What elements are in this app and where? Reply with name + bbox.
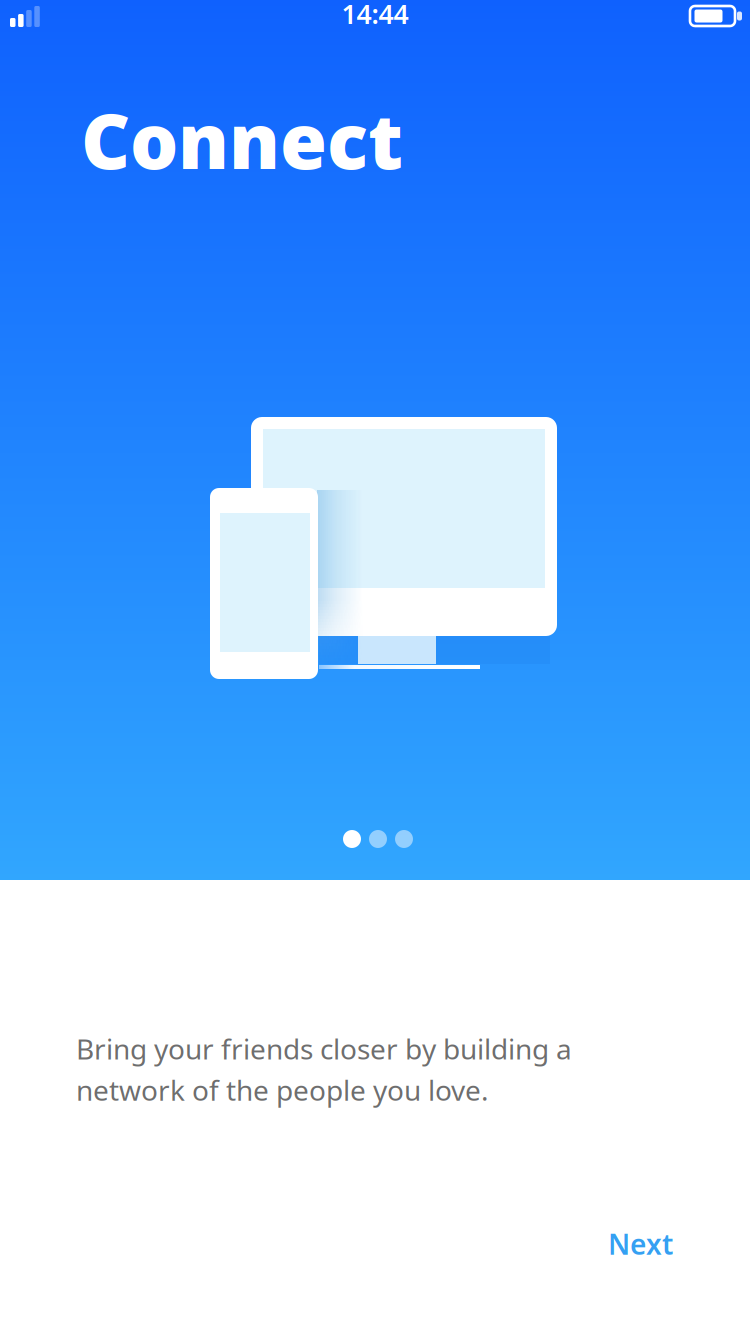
button[interactable]: Next (583, 1222, 673, 1266)
staticText: Next (608, 1225, 673, 1263)
button[interactable]: Page 1 (343, 830, 361, 848)
button[interactable]: Page 2 (369, 830, 387, 848)
staticText: Bring your friends closer by building a … (76, 1030, 572, 1108)
staticText: 14:44 (341, 0, 408, 31)
staticText: Connect (81, 89, 403, 190)
button[interactable]: Page 3 (395, 830, 413, 848)
